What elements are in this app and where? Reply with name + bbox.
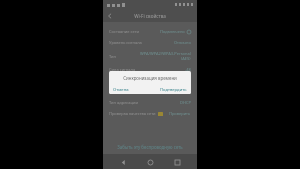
staticText: Частота — [109, 89, 181, 94]
button[interactable]: Сила сигнала — [109, 64, 191, 75]
staticText: WPA/WPA2/WPA3-Personal — [140, 51, 191, 56]
staticText: -48 — [185, 67, 191, 72]
button[interactable]: Recents — [170, 155, 184, 169]
staticText: Состояние сети — [109, 29, 160, 34]
staticText: Забыть эту беспроводную сеть — [117, 144, 183, 150]
staticText: DHCP — [180, 100, 191, 105]
button[interactable]: Проверка качества сети — [109, 108, 191, 119]
button[interactable]: Уровень сигнала — [109, 37, 191, 48]
button[interactable]: Отмена — [113, 85, 150, 94]
staticText: Проверка качества сети — [109, 111, 156, 116]
staticText: Wi-Fi свойства — [134, 13, 166, 19]
staticText: Подтвердить — [160, 87, 187, 93]
button[interactable]: Back — [116, 155, 130, 169]
staticText: Уровень сигнала — [109, 40, 174, 45]
staticText: (AES) — [181, 56, 191, 61]
staticText: Тип шифрования и безопасности — [109, 54, 140, 59]
staticText: Отлично — [174, 40, 191, 45]
button[interactable]: Забыть эту беспроводную сеть — [109, 144, 191, 150]
button[interactable]: Тип шифрования и безопасности — [109, 48, 191, 64]
button[interactable]: Скорость связи — [109, 75, 191, 86]
staticText: Проверить — [169, 111, 191, 116]
staticText: Сила сигнала — [109, 67, 185, 72]
staticText: Отмена — [113, 87, 129, 93]
staticText: Скорость связи — [109, 78, 184, 83]
staticText: Тип адресации — [109, 100, 180, 105]
button[interactable]: Состояние сети — [109, 26, 191, 37]
button[interactable]: Back — [103, 9, 116, 22]
button[interactable]: Тип адресации — [109, 97, 191, 108]
staticText: Синхронизация времени — [123, 75, 177, 81]
button[interactable]: Частота — [109, 86, 191, 97]
button[interactable]: Подтвердить — [150, 85, 187, 94]
button[interactable]: Home — [143, 155, 157, 169]
staticText: Подключено — [160, 29, 185, 34]
staticText: 5 ГГц — [181, 89, 191, 94]
